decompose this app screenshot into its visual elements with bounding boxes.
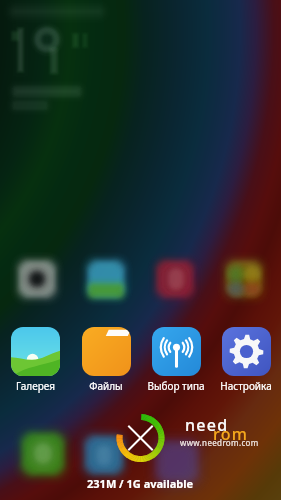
staticText: rom <box>213 423 249 445</box>
staticText: Галерея <box>16 379 55 393</box>
button[interactable]: Выбор типа <box>141 327 211 393</box>
button[interactable]: Файлы <box>71 327 141 393</box>
button[interactable]: Галерея <box>0 327 71 393</box>
button[interactable]: Настройка <box>211 327 281 393</box>
staticText: need <box>185 414 229 436</box>
staticText: www.needrom.com <box>180 437 259 448</box>
staticText: Выбор типа <box>147 379 205 393</box>
staticText: Файлы <box>89 379 123 393</box>
staticText: Настройка <box>220 379 272 393</box>
staticText: 231M / 1G available <box>87 476 194 491</box>
